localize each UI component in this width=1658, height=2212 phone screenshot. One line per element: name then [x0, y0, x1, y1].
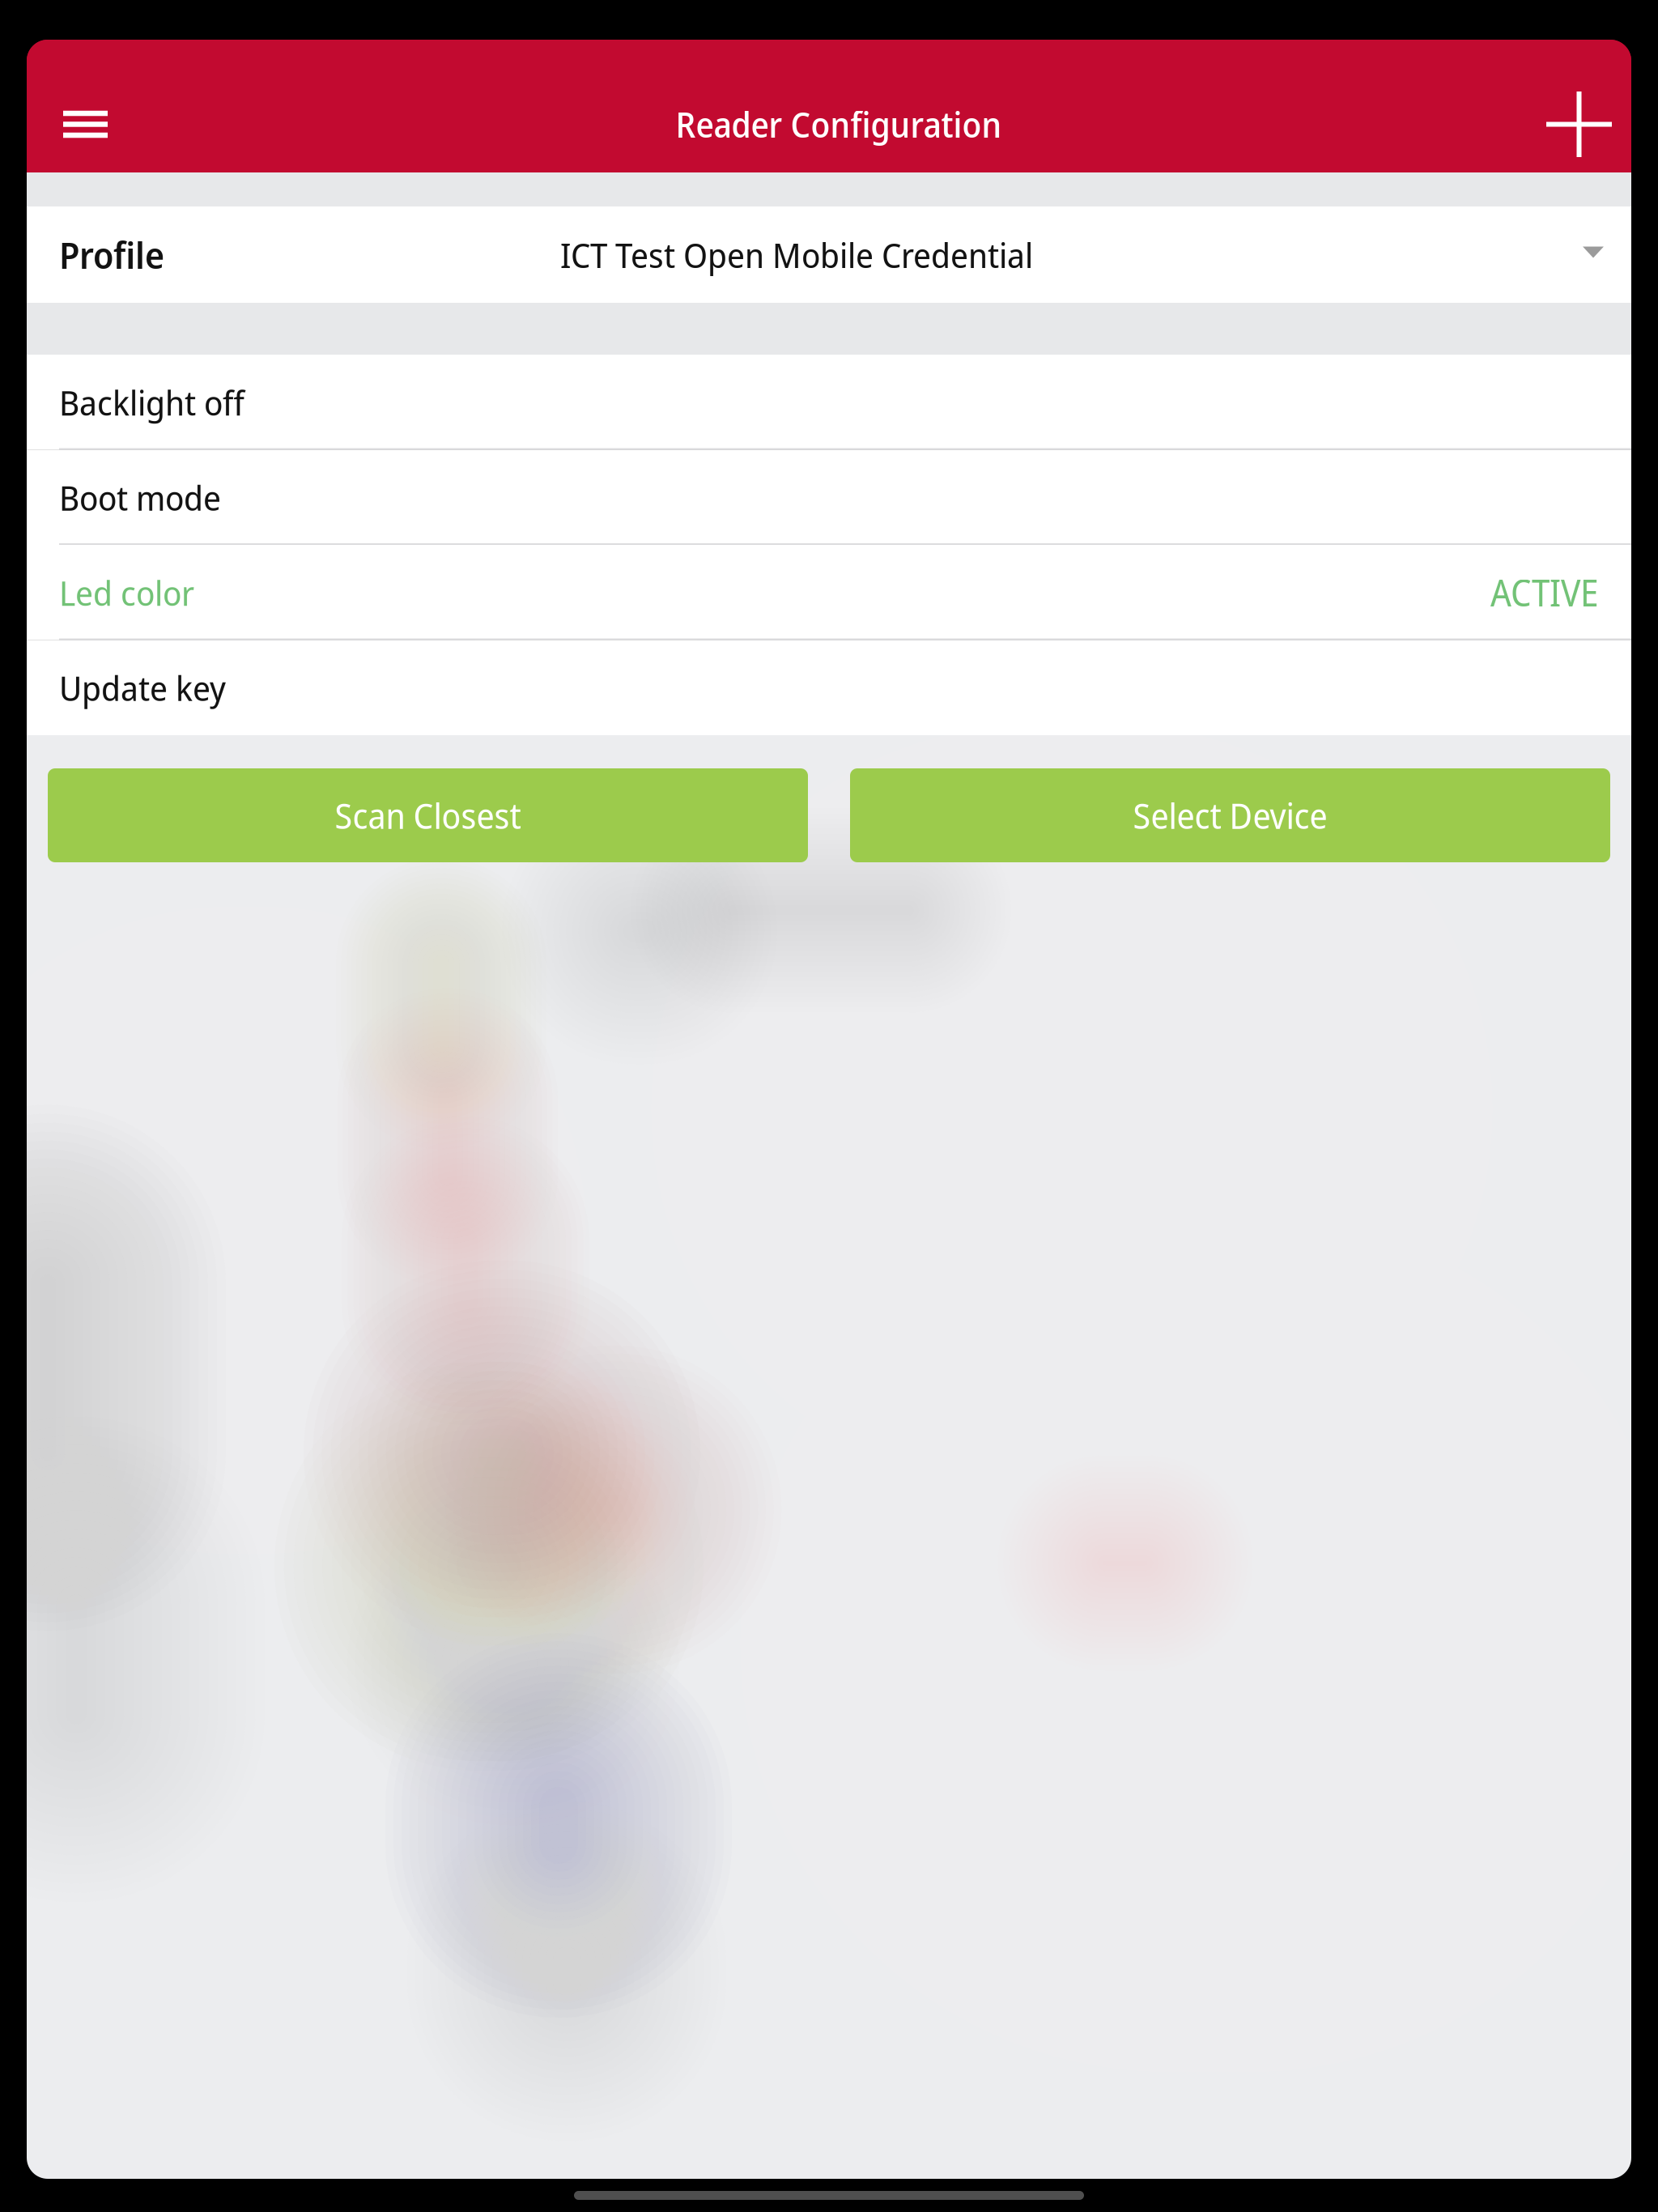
staticText: Led color	[59, 569, 194, 616]
button[interactable]: Update key	[27, 640, 1631, 735]
button[interactable]: Profile	[27, 206, 1631, 303]
staticText: Select Device	[1133, 792, 1327, 839]
button[interactable]: Select Device	[850, 768, 1610, 862]
staticText: Reader Configuration	[676, 101, 1002, 148]
button[interactable]: Add	[1527, 76, 1631, 172]
staticText: Update key	[59, 664, 226, 711]
button[interactable]: Menu	[27, 76, 144, 172]
button[interactable]: Led color	[27, 545, 1631, 640]
button[interactable]: Boot mode	[27, 450, 1631, 545]
staticText: ACTIVE	[1490, 568, 1599, 617]
staticText: Profile	[59, 230, 164, 280]
staticText: Scan Closest	[335, 792, 521, 839]
button[interactable]: Backlight off	[27, 355, 1631, 450]
button[interactable]: Scan Closest	[48, 768, 808, 862]
staticText: ICT Test Open Mobile Credential	[560, 231, 1033, 278]
staticText: Boot mode	[59, 474, 221, 521]
staticText: Backlight off	[59, 379, 244, 426]
